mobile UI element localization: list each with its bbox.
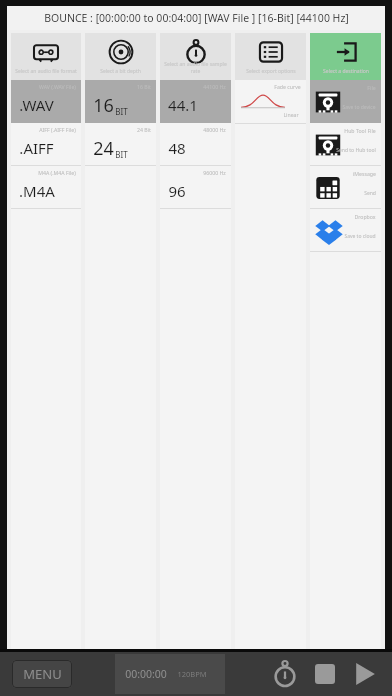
staticText: Select a bit depth [100, 68, 141, 75]
staticText: .WAV [19, 95, 54, 115]
button[interactable]: 44100 Hz [160, 80, 231, 123]
button[interactable]: File [310, 80, 381, 123]
button[interactable]: AIFF (.AIFF File) [11, 123, 81, 166]
button[interactable]: Select a destination [310, 33, 381, 80]
button[interactable]: Select an audio file sample rate [160, 33, 231, 80]
button[interactable]: Record [268, 657, 302, 691]
staticText: 48000 Hz [203, 126, 226, 133]
button[interactable]: Play [348, 657, 382, 691]
staticText: Save to cloud [344, 233, 376, 240]
button[interactable]: 24 Bit [85, 123, 156, 166]
staticText: 24 [93, 136, 114, 161]
staticText: iMessage [353, 170, 376, 177]
staticText: 96 [168, 181, 186, 201]
staticText: 00:00:00 [125, 667, 167, 681]
staticText: 24 Bit [137, 126, 151, 133]
staticText: 44.1 [168, 95, 198, 115]
button[interactable]: WAV (.WAV File) [11, 80, 81, 123]
button[interactable]: Hub Tool File [310, 123, 381, 166]
button[interactable]: MENU [12, 660, 72, 688]
staticText: 96000 Hz [203, 169, 226, 176]
staticText: BIT [115, 149, 128, 160]
button[interactable]: Select an audio file format [11, 33, 81, 80]
staticText: BIT [115, 106, 128, 117]
button[interactable]: Select a bit depth [85, 33, 156, 80]
staticText: Select a destination [323, 68, 369, 75]
staticText: 16 Bit [137, 83, 151, 90]
staticText: BOUNCE : [00:00:00 to 00:04:00] [WAV Fil… [44, 11, 349, 25]
staticText: 48 [168, 138, 186, 158]
staticText: 44100 Hz [203, 83, 226, 90]
staticText: Send to Hub tool [336, 147, 376, 154]
button[interactable]: Dropbox [310, 209, 381, 252]
staticText: Fade curve [274, 83, 301, 90]
staticText: AIFF (.AIFF File) [39, 126, 76, 133]
staticText: Select an audio file format [15, 68, 77, 75]
button[interactable]: M4A (.M4A File) [11, 166, 81, 209]
staticText: M4A (.M4A File) [38, 169, 76, 176]
staticText: Select an audio file sample rate [160, 61, 231, 75]
button[interactable]: Select export options [235, 33, 306, 80]
staticText: Linear [283, 111, 299, 118]
staticText: Dropbox [354, 213, 376, 220]
staticText: WAV (.WAV File) [39, 83, 76, 90]
staticText: Hub Tool File [344, 127, 376, 134]
staticText: Send [364, 190, 376, 197]
staticText: .M4A [19, 181, 55, 201]
button[interactable]: Fade curve [235, 80, 306, 124]
button[interactable]: 16 Bit [85, 80, 156, 123]
staticText: 16 [93, 93, 114, 118]
button[interactable]: 96000 Hz [160, 166, 231, 209]
staticText: File [367, 84, 376, 91]
button[interactable]: 00:00:00 [115, 654, 225, 694]
button[interactable]: Stop [308, 657, 342, 691]
staticText: .AIFF [19, 138, 54, 158]
button[interactable]: iMessage [310, 166, 381, 209]
staticText: Save to device [342, 104, 376, 111]
button[interactable]: 48000 Hz [160, 123, 231, 166]
staticText: 120BPM [177, 669, 207, 679]
staticText: MENU [23, 665, 62, 683]
staticText: Select export options [246, 68, 296, 75]
